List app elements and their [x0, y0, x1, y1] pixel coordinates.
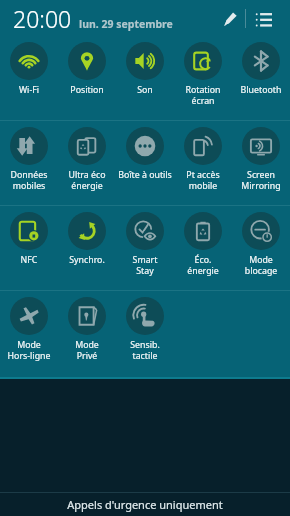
- button[interactable]: Position: [58, 36, 116, 120]
- button[interactable]: Synchro.: [58, 206, 116, 290]
- staticText: Position: [59, 84, 115, 96]
- button[interactable]: Rotation écran: [174, 36, 232, 120]
- staticText: Pt accès mobile: [175, 169, 231, 192]
- staticText: Mode Hors-ligne: [1, 339, 57, 362]
- staticText: Éco. énergie: [175, 254, 231, 277]
- staticText: Mode Privé: [59, 339, 115, 362]
- staticText: 20:00: [13, 3, 72, 34]
- staticText: lun. 29 septembre: [79, 17, 173, 31]
- button[interactable]: Appels d'urgence uniquement: [0, 493, 290, 516]
- button[interactable]: Mode blocage: [232, 206, 290, 290]
- button[interactable]: Boîte à outils: [116, 121, 174, 205]
- staticText: Son: [117, 84, 173, 96]
- staticText: Screen Mirroring: [233, 169, 289, 192]
- button[interactable]: NFC: [0, 206, 58, 290]
- staticText: Ultra éco énergie: [59, 169, 115, 192]
- button[interactable]: Wi-Fi: [0, 36, 58, 120]
- staticText: Mode blocage: [233, 254, 289, 277]
- button[interactable]: Éco. énergie: [174, 206, 232, 290]
- button[interactable]: Bluetooth: [232, 36, 290, 120]
- staticText: Sensib. tactile: [117, 339, 173, 362]
- staticText: NFC: [1, 254, 57, 266]
- button[interactable]: Liste: [246, 1, 280, 35]
- button[interactable]: Pt accès mobile: [174, 121, 232, 205]
- staticText: Wi-Fi: [1, 84, 57, 96]
- button[interactable]: Son: [116, 36, 174, 120]
- staticText: Boîte à outils: [117, 169, 173, 181]
- staticText: Données mobiles: [1, 169, 57, 192]
- staticText: Rotation écran: [175, 84, 231, 107]
- button[interactable]: Smart Stay: [116, 206, 174, 290]
- button[interactable]: Données mobiles: [0, 121, 58, 205]
- button[interactable]: Screen Mirroring: [232, 121, 290, 205]
- staticText: Appels d'urgence uniquement: [67, 497, 223, 512]
- button[interactable]: Modifier: [211, 1, 245, 35]
- staticText: Bluetooth: [233, 84, 289, 96]
- button[interactable]: Sensib. tactile: [116, 291, 174, 375]
- button[interactable]: Mode Hors-ligne: [0, 291, 58, 375]
- staticText: Smart Stay: [117, 254, 173, 277]
- button[interactable]: Ultra éco énergie: [58, 121, 116, 205]
- staticText: Synchro.: [59, 254, 115, 266]
- button[interactable]: Mode Privé: [58, 291, 116, 375]
